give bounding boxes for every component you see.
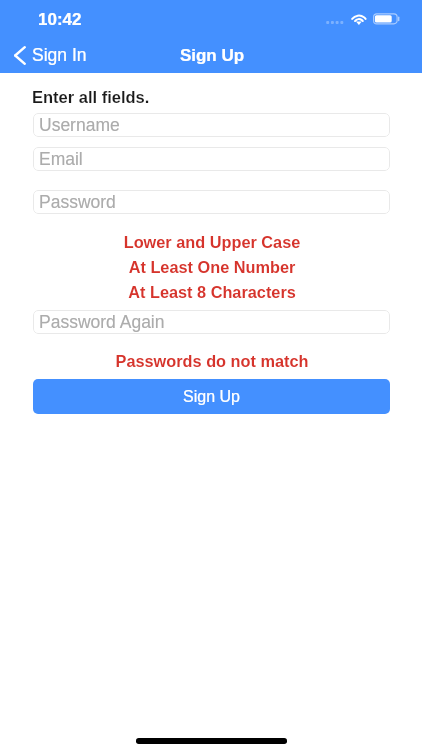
staticText: At Least One Number — [1, 258, 422, 276]
staticText: Email — [39, 149, 83, 169]
staticText: Sign In — [32, 45, 87, 65]
other: Back — [14, 46, 26, 65]
staticText: Password Again — [39, 312, 165, 332]
staticText: At Least 8 Characters — [1, 283, 422, 301]
staticText: Username — [39, 115, 120, 135]
button[interactable]: Sign Up — [33, 379, 390, 414]
staticText: Sign Up — [1, 46, 422, 65]
staticText: Password — [39, 192, 116, 212]
button[interactable]: Username — [33, 113, 390, 137]
button[interactable]: Back — [6, 41, 95, 69]
staticText: Lower and Upper Case — [1, 233, 422, 251]
staticText: Sign Up — [183, 388, 240, 406]
button[interactable]: Password — [33, 190, 390, 214]
staticText: Enter all fields. — [32, 88, 150, 106]
button[interactable]: Password Again — [33, 310, 390, 334]
staticText: 10:42 — [38, 10, 82, 29]
button[interactable]: Email — [33, 147, 390, 171]
staticText: Passwords do not match — [1, 352, 422, 370]
